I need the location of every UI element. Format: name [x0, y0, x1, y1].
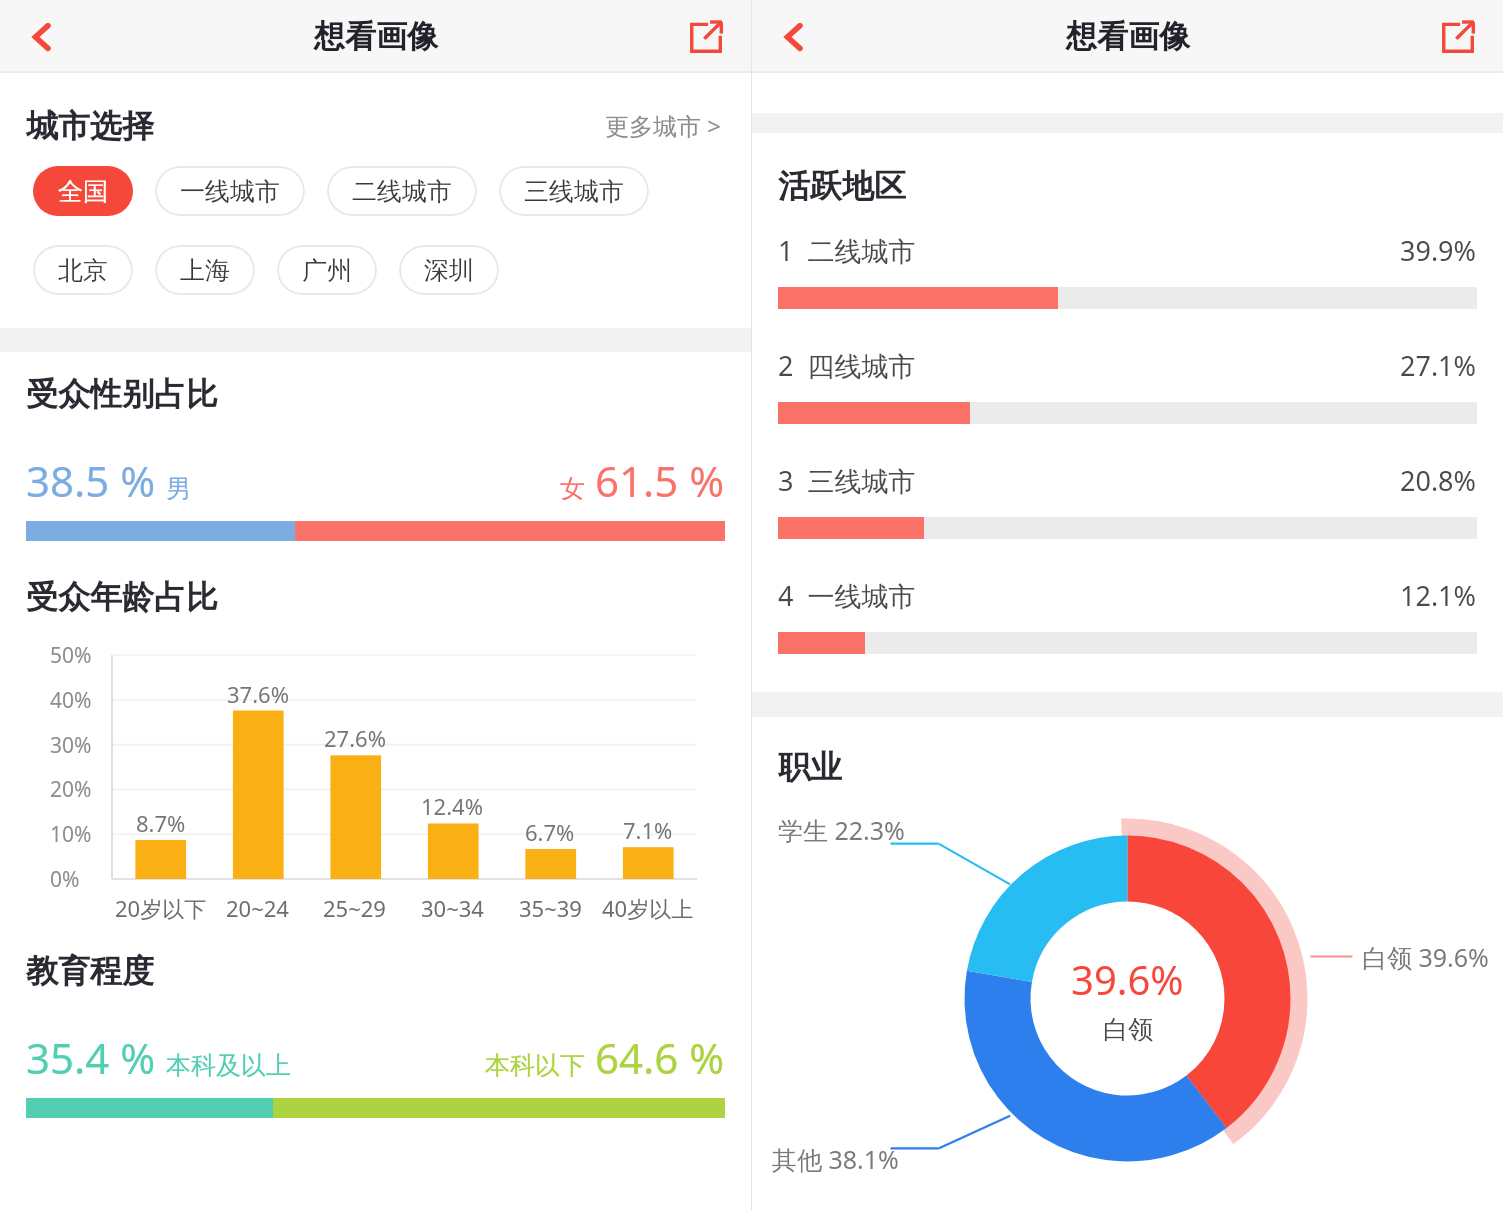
staticText: 白领 39.6%: [1362, 940, 1489, 974]
staticText: 35.4 %: [26, 1029, 156, 1086]
staticText: 教育程度: [26, 951, 154, 991]
staticText: 12.1%: [1400, 577, 1477, 614]
staticText: 本科及以上: [166, 1050, 291, 1081]
staticText: 38.5 %: [26, 452, 156, 509]
button[interactable]: 上海: [155, 245, 255, 295]
button[interactable]: Back: [10, 5, 74, 69]
staticText: 受众性别占比: [26, 374, 218, 414]
staticText: 40%: [50, 686, 92, 715]
staticText: 上海: [180, 255, 230, 286]
staticText: 三线城市: [524, 176, 624, 207]
staticText: 更多城市 >: [605, 109, 721, 142]
staticText: 50%: [50, 641, 92, 670]
staticText: 4 一线城市: [778, 577, 916, 614]
staticText: 一线城市: [180, 176, 280, 207]
staticText: 39.6%: [1071, 952, 1184, 1006]
button[interactable]: 二线城市: [327, 166, 477, 216]
staticText: 20~24: [226, 893, 289, 923]
staticText: 61.5 %: [595, 452, 725, 509]
staticText: 白领: [1103, 1014, 1153, 1045]
staticText: 女: [560, 473, 585, 504]
staticText: 2 四线城市: [778, 347, 916, 384]
staticText: 学生 22.3%: [778, 813, 905, 847]
staticText: 城市选择: [26, 106, 154, 146]
staticText: 深圳: [424, 255, 474, 286]
staticText: 37.6%: [227, 679, 289, 709]
staticText: 3 三线城市: [778, 462, 916, 499]
button[interactable]: 全国: [33, 166, 133, 216]
staticText: 男: [166, 473, 191, 504]
button[interactable]: 三线城市: [499, 166, 649, 216]
button[interactable]: 深圳: [399, 245, 499, 295]
staticText: 广州: [302, 255, 352, 286]
staticText: 20.8%: [1400, 462, 1477, 499]
staticText: 本科以下: [485, 1050, 585, 1081]
staticText: 二线城市: [352, 176, 452, 207]
staticText: 北京: [58, 255, 108, 286]
staticText: 40岁以上: [602, 893, 694, 923]
staticText: 10%: [50, 820, 92, 849]
staticText: 30~34: [421, 893, 484, 923]
button[interactable]: Back: [762, 5, 826, 69]
staticText: 受众年龄占比: [26, 577, 218, 617]
staticText: 27.1%: [1400, 347, 1477, 384]
button[interactable]: 广州: [277, 245, 377, 295]
staticText: 6.7%: [525, 817, 575, 847]
button[interactable]: 2 四线城市: [752, 347, 1503, 424]
staticText: 职业: [778, 747, 842, 787]
button[interactable]: Share: [1429, 8, 1487, 66]
button[interactable]: 1 二线城市: [752, 232, 1503, 309]
staticText: 其他 38.1%: [772, 1142, 899, 1176]
button[interactable]: 3 三线城市: [752, 462, 1503, 539]
staticText: 25~29: [323, 893, 386, 923]
staticText: 7.1%: [623, 815, 673, 845]
staticText: 27.6%: [324, 723, 386, 753]
staticText: 8.7%: [136, 808, 186, 838]
button[interactable]: 4 一线城市: [752, 577, 1503, 654]
staticText: 1 二线城市: [778, 232, 916, 269]
staticText: 想看画像: [1066, 17, 1190, 56]
button[interactable]: 更多城市 >: [601, 105, 725, 146]
button[interactable]: 北京: [33, 245, 133, 295]
staticText: 活跃地区: [778, 166, 906, 206]
staticText: 12.4%: [421, 791, 483, 821]
button[interactable]: 一线城市: [155, 166, 305, 216]
staticText: 20岁以下: [115, 893, 207, 923]
staticText: 35~39: [519, 893, 582, 923]
staticText: 全国: [58, 176, 108, 207]
staticText: 64.6 %: [595, 1029, 725, 1086]
staticText: 39.9%: [1400, 232, 1477, 269]
staticText: 30%: [50, 731, 92, 760]
button[interactable]: Share: [677, 8, 735, 66]
staticText: 0%: [50, 865, 80, 894]
staticText: 20%: [50, 775, 92, 804]
staticText: 想看画像: [314, 17, 438, 56]
